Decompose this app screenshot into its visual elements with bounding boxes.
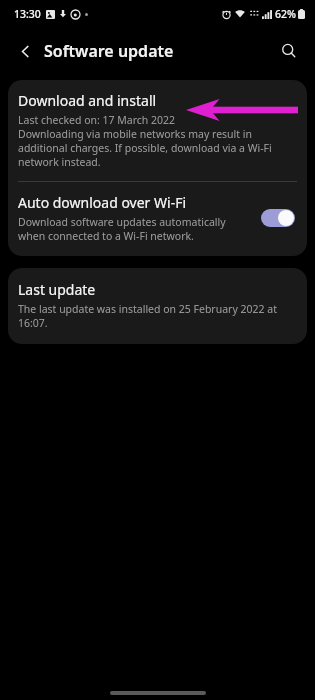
- staticText: Download software updates automatically …: [18, 215, 253, 243]
- staticText: Software update: [44, 40, 174, 62]
- button[interactable]: Back: [10, 36, 40, 66]
- staticText: Downloading via mobile networks may resu…: [18, 127, 293, 169]
- button[interactable]: Search: [273, 35, 305, 67]
- staticText: 62%: [275, 7, 296, 21]
- staticText: 13:30: [14, 7, 41, 21]
- staticText: Auto download over Wi-Fi: [18, 193, 187, 212]
- staticText: Last update: [18, 280, 96, 299]
- button[interactable]: Auto download over Wi-Fi: [8, 182, 307, 256]
- staticText: The last update was installed on 25 Febr…: [18, 302, 293, 330]
- staticText: Download and install: [18, 91, 157, 110]
- button[interactable]: Download and install: [8, 80, 307, 181]
- button[interactable]: Auto download over Wi-Fi toggle: [261, 209, 295, 227]
- button[interactable]: Last update: [8, 268, 307, 344]
- staticText: Last checked on: 17 March 2022: [18, 113, 176, 127]
